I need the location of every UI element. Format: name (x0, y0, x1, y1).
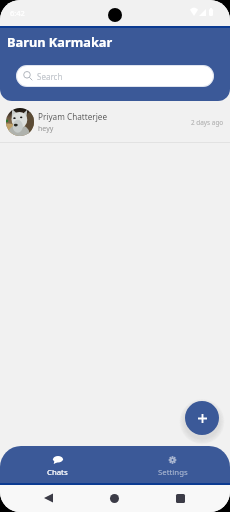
staticText: Search (37, 71, 63, 82)
button[interactable]: Home (110, 494, 119, 503)
button[interactable]: New chat (185, 401, 219, 435)
button[interactable]: Chats (0, 446, 115, 485)
staticText: 6:42 (10, 8, 25, 18)
staticText: Chats (47, 467, 68, 478)
button[interactable]: Search (16, 65, 214, 87)
staticText: Priyam Chatterjee (38, 111, 108, 122)
button[interactable]: Recents (176, 494, 185, 503)
staticText: Settings (158, 467, 188, 478)
button[interactable]: Settings (115, 446, 230, 485)
staticText: 2 days ago (191, 118, 224, 127)
staticText: Barun Karmakar (7, 33, 113, 50)
button[interactable]: Priyam Chatterjee (0, 101, 230, 142)
button[interactable]: Back (44, 493, 53, 503)
staticText: heyy (38, 124, 54, 134)
